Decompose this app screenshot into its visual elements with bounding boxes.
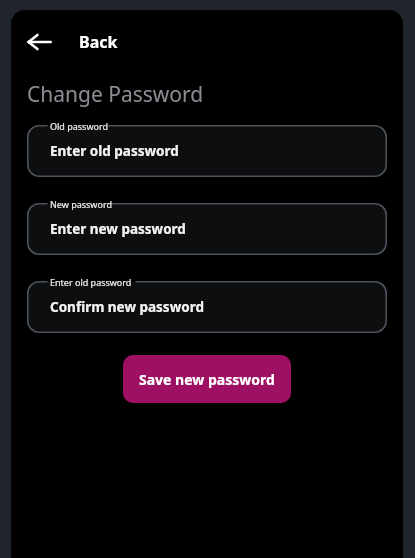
staticText: Enter new password [50, 220, 186, 238]
button[interactable]: Back [19, 22, 59, 62]
staticText: Enter old password [50, 276, 132, 288]
staticText: Old password [50, 120, 109, 132]
button[interactable]: Back [79, 31, 118, 53]
button[interactable]: Save new password [123, 355, 291, 403]
button[interactable]: New password [27, 203, 387, 255]
button[interactable]: Enter old password [27, 281, 387, 333]
staticText: New password [50, 198, 112, 210]
staticText: Confirm new password [50, 298, 204, 316]
staticText: Change Password [27, 80, 204, 109]
button[interactable]: Old password [27, 125, 387, 177]
staticText: Save new password [139, 370, 275, 389]
staticText: Enter old password [50, 142, 179, 160]
